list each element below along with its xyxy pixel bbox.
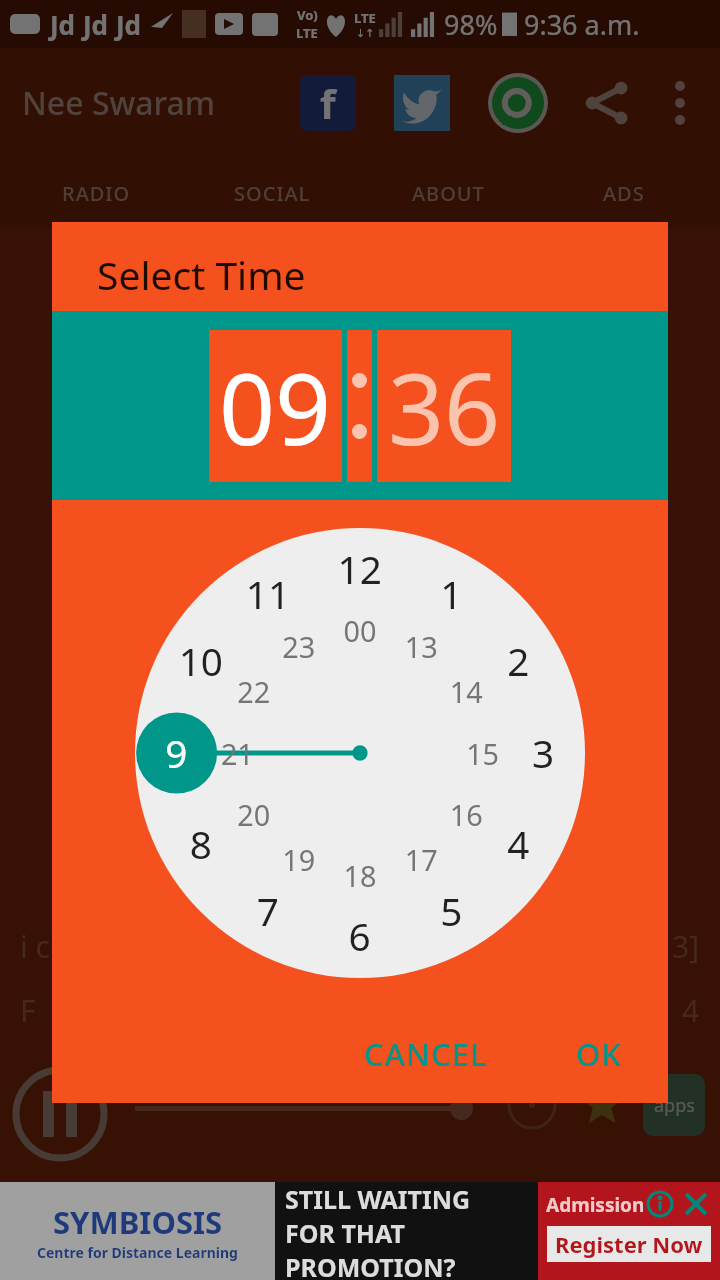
button[interactable]: RADIO bbox=[8, 158, 184, 228]
staticText: OK bbox=[576, 1033, 622, 1075]
staticText: i c bbox=[20, 926, 50, 967]
button[interactable]: apps bbox=[643, 1074, 705, 1136]
button[interactable]: Hour 09 bbox=[209, 330, 342, 482]
staticText: 09 bbox=[219, 340, 332, 473]
staticText: 36 bbox=[388, 340, 501, 473]
button[interactable]: More options bbox=[654, 77, 706, 129]
staticText: Centre for Distance Learning bbox=[37, 1243, 238, 1262]
button[interactable]: SOCIAL bbox=[184, 158, 360, 228]
staticText: ABOUT bbox=[412, 180, 485, 207]
button[interactable]: SYMBIOSIS bbox=[0, 1182, 720, 1280]
staticText: LTE bbox=[296, 24, 318, 42]
button[interactable]: Share bbox=[578, 74, 636, 132]
button[interactable]: WhatsApp bbox=[486, 71, 550, 135]
button[interactable]: CANCEL bbox=[346, 1019, 506, 1089]
staticText: F bbox=[20, 990, 36, 1031]
staticText: FOR THAT bbox=[285, 1216, 405, 1250]
staticText: ↓↑ bbox=[356, 27, 375, 40]
button[interactable]: Facebook bbox=[300, 75, 356, 131]
staticText: Vo) bbox=[297, 6, 318, 24]
staticText: 98% bbox=[444, 6, 498, 43]
staticText: Jd bbox=[83, 7, 109, 42]
staticText: RADIO bbox=[62, 180, 131, 207]
staticText: Admission bbox=[546, 1192, 645, 1218]
staticText: 4 bbox=[682, 990, 700, 1031]
button[interactable]: Minute 36 bbox=[377, 330, 511, 482]
staticText: Nee Swaram bbox=[22, 81, 216, 125]
button[interactable]: Close ad bbox=[682, 1190, 710, 1218]
staticText: Register Now bbox=[555, 1229, 703, 1259]
staticText: 9:36 a.m. bbox=[524, 6, 640, 43]
staticText: Select Time bbox=[97, 248, 306, 301]
button[interactable]: OK bbox=[558, 1019, 640, 1089]
staticText: SOCIAL bbox=[234, 180, 311, 207]
staticText: ADS bbox=[603, 180, 645, 207]
button[interactable]: ABOUT bbox=[360, 158, 536, 228]
staticText: LTE bbox=[354, 9, 376, 27]
staticText: CANCEL bbox=[364, 1033, 488, 1075]
staticText: 3] bbox=[672, 926, 700, 967]
staticText: PROMOTION? bbox=[285, 1250, 456, 1280]
button[interactable]: Ad information bbox=[646, 1190, 674, 1218]
staticText: f bbox=[320, 76, 336, 130]
staticText: Jd bbox=[50, 7, 76, 42]
button[interactable]: Clock face, 9 o'clock selected bbox=[135, 528, 585, 978]
staticText: SYMBIOSIS bbox=[53, 1201, 223, 1243]
button[interactable]: ADS bbox=[536, 158, 712, 228]
staticText: STILL WAITING bbox=[285, 1182, 471, 1216]
button[interactable]: Twitter bbox=[394, 75, 450, 131]
staticText: apps bbox=[654, 1093, 695, 1118]
button[interactable]: Pause bbox=[12, 1066, 108, 1162]
staticText: Jd bbox=[116, 7, 142, 42]
